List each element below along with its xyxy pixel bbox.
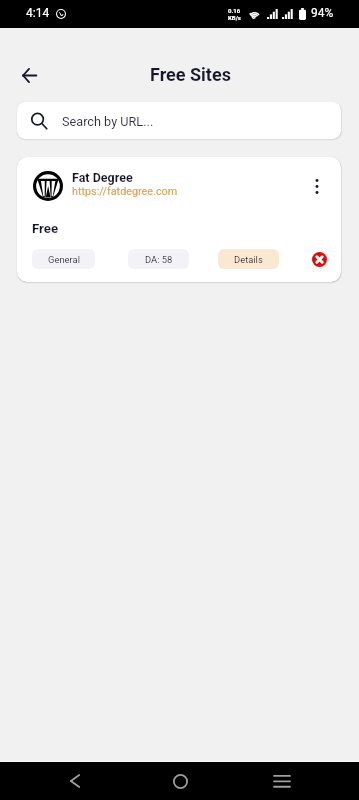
staticText: Details — [234, 254, 263, 265]
button[interactable]: Home — [162, 763, 198, 799]
staticText: Fat Degree — [72, 170, 133, 185]
staticText: Free — [32, 221, 59, 236]
button[interactable]: Remove site — [308, 248, 330, 270]
button[interactable]: Back — [57, 763, 93, 799]
button[interactable]: More options — [304, 173, 330, 199]
button[interactable]: Back — [8, 54, 50, 96]
staticText: General — [48, 254, 80, 265]
staticText: Free Sites — [150, 64, 231, 85]
button[interactable]: General — [32, 249, 95, 269]
staticText: https://fatdegree.com — [72, 185, 178, 198]
staticText: 4:14 — [26, 6, 50, 20]
staticText: 0.16 — [228, 7, 241, 14]
button[interactable]: Fat Degree — [17, 157, 341, 282]
staticText: 94% — [311, 6, 334, 20]
staticText: KB/s — [228, 14, 241, 21]
button[interactable]: Recent apps — [264, 763, 300, 799]
button[interactable]: Search by URL... — [17, 102, 341, 139]
button[interactable]: DA: 58 — [128, 249, 189, 269]
button[interactable]: Details — [218, 249, 279, 269]
staticText: DA: 58 — [145, 254, 173, 265]
staticText: Search by URL... — [62, 114, 154, 129]
